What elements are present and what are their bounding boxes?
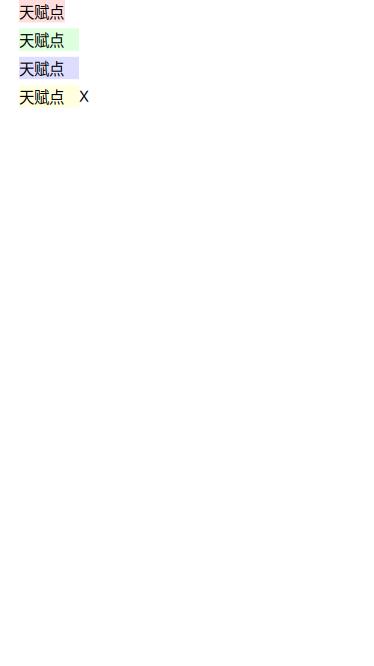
staticText: 天赋点 <box>19 28 64 51</box>
staticText: X <box>79 87 89 105</box>
staticText: 天赋点 <box>19 0 64 22</box>
staticText: 天赋点 <box>19 85 64 108</box>
staticText: 天赋点 <box>19 57 64 79</box>
